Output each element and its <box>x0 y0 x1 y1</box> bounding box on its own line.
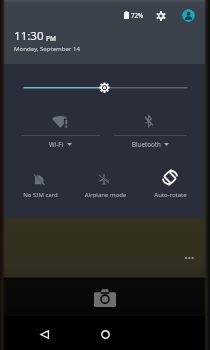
button[interactable]: Bluetooth <box>114 108 187 150</box>
button[interactable]: Camera <box>88 284 121 312</box>
staticText: Bluetooth <box>132 140 161 148</box>
staticText: 72% <box>131 11 144 19</box>
button[interactable]: Auto-rotate <box>138 166 203 204</box>
button[interactable]: Brightness <box>0 80 210 96</box>
button[interactable]: Airplane mode <box>73 166 138 204</box>
button[interactable]: Home <box>95 324 115 344</box>
staticText: Auto-rotate <box>138 191 203 199</box>
staticText: Monday, September 14 <box>14 45 80 53</box>
button[interactable]: User account <box>182 9 195 22</box>
button[interactable]: More options <box>179 250 199 265</box>
staticText: PM <box>46 34 56 43</box>
staticText: 11:30 <box>14 28 44 44</box>
button[interactable]: No SIM card <box>8 166 73 204</box>
staticText: Airplane mode <box>73 191 138 199</box>
button[interactable]: Back <box>34 324 54 344</box>
button[interactable]: Wi-Fi <box>21 108 100 150</box>
button[interactable]: Settings <box>154 9 168 23</box>
staticText: No SIM card <box>8 191 73 199</box>
staticText: Wi-Fi <box>49 140 64 148</box>
